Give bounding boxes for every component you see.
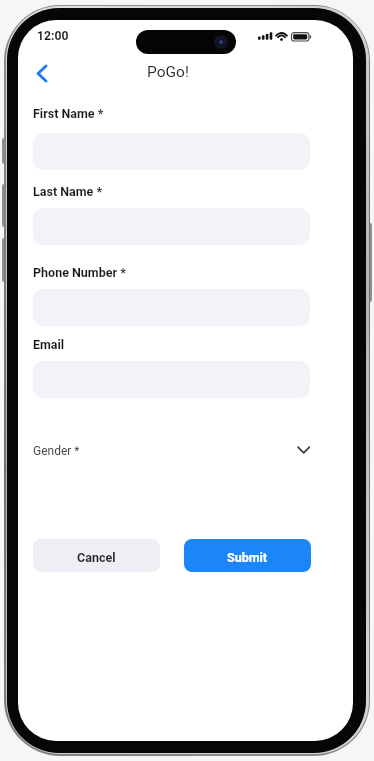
button[interactable]: Cancel bbox=[33, 539, 160, 572]
button[interactable]: Gender * bbox=[28, 436, 316, 462]
staticText: 12:00 bbox=[37, 29, 69, 43]
staticText: PoGo! bbox=[147, 63, 189, 81]
staticText: Phone Number * bbox=[33, 265, 126, 280]
staticText: Last Name * bbox=[33, 184, 103, 199]
staticText: Gender * bbox=[33, 444, 80, 458]
button[interactable] bbox=[30, 60, 58, 88]
staticText: Cancel bbox=[77, 550, 116, 565]
staticText: Email bbox=[33, 337, 65, 352]
staticText: Submit bbox=[227, 550, 268, 565]
staticText: First Name * bbox=[33, 106, 104, 121]
button[interactable]: Submit bbox=[184, 539, 311, 572]
